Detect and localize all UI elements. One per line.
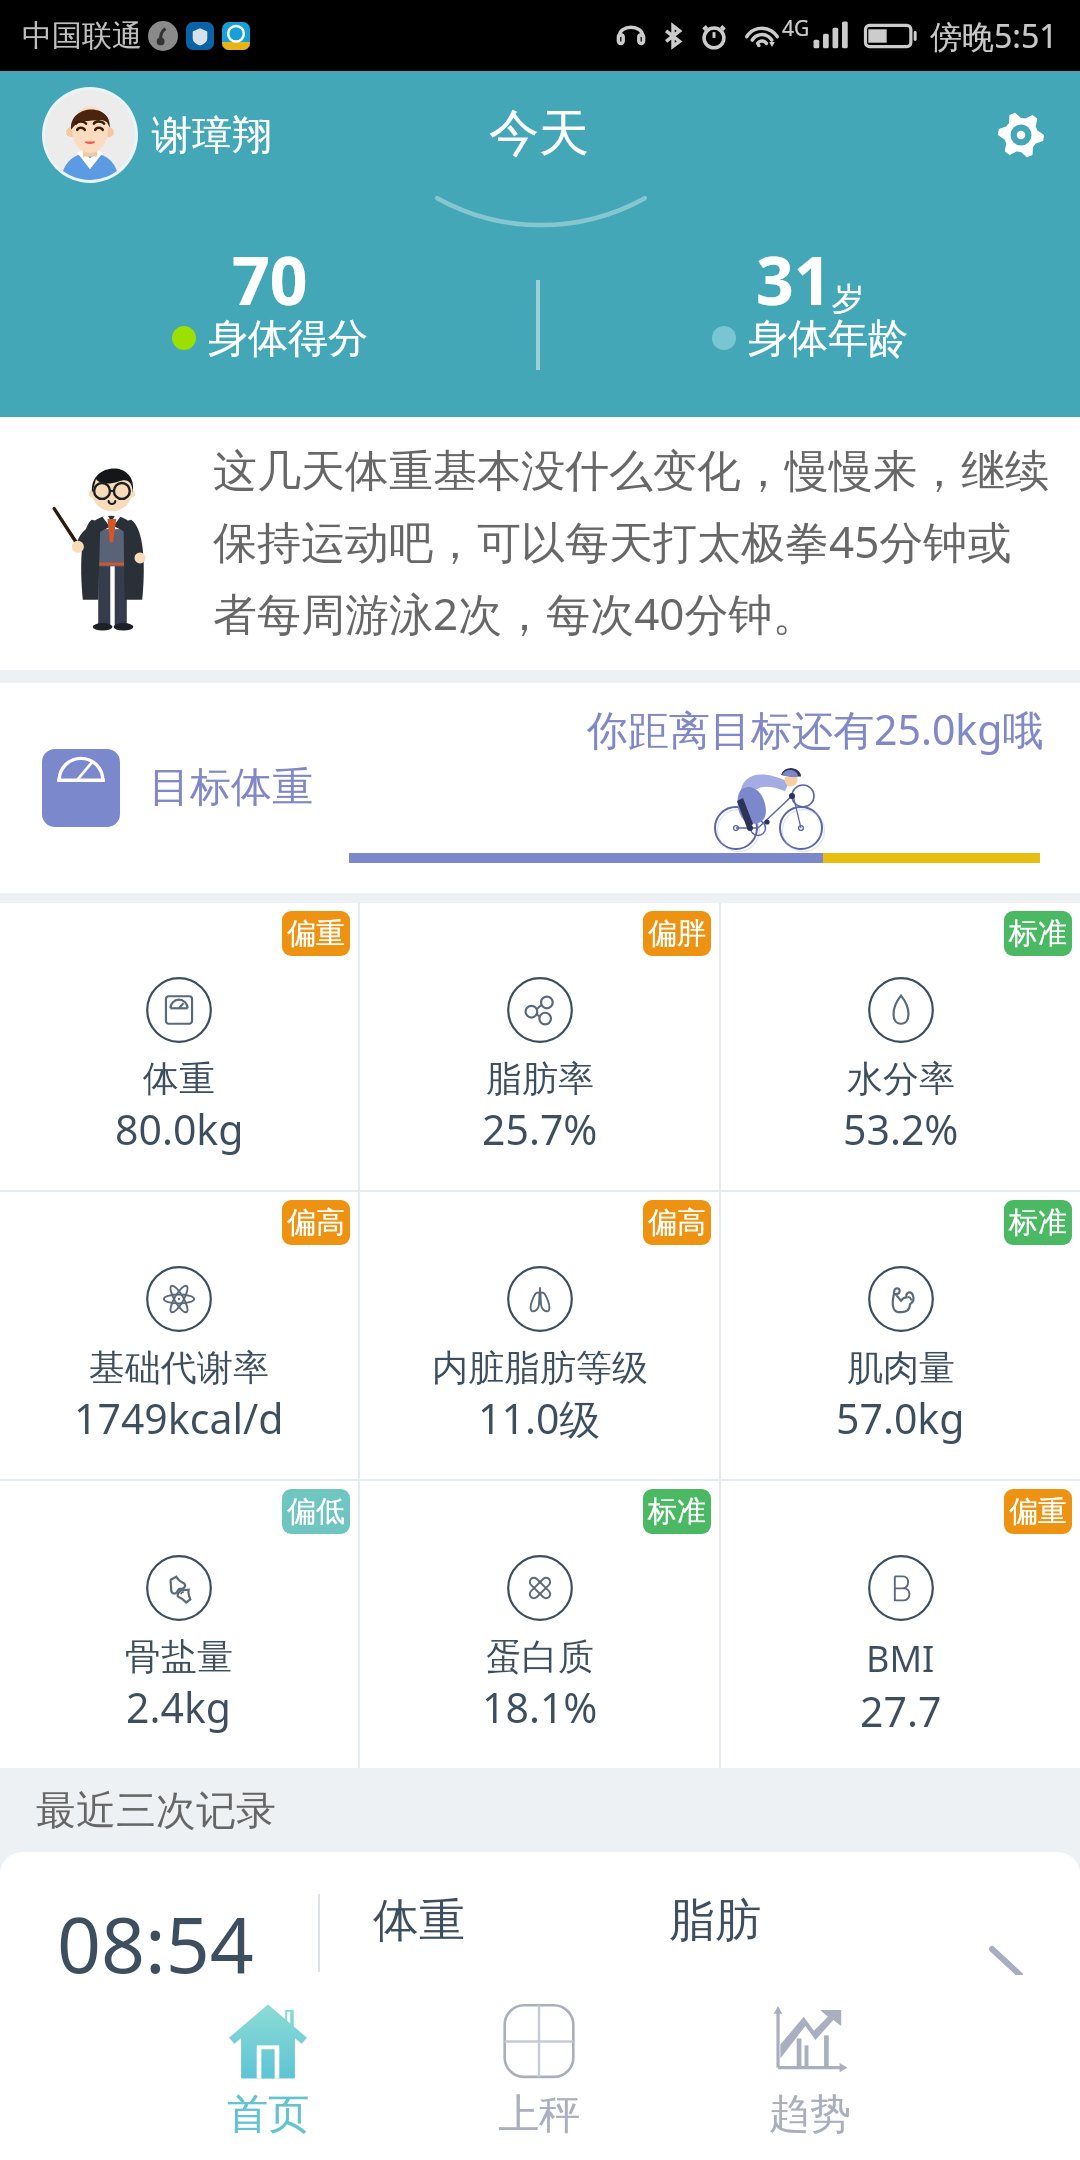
staticText: 标准 [648, 1493, 706, 1530]
staticText: 偏高 [648, 1204, 706, 1241]
staticText: 偏低 [287, 1493, 345, 1530]
staticText: 最近三次记录 [36, 1785, 276, 1835]
staticText: 脂肪率 [486, 1056, 594, 1101]
staticText: 2.4kg [126, 1679, 232, 1735]
staticText: 4G [782, 14, 810, 43]
button[interactable]: 标准 [721, 903, 1080, 1190]
staticText: 53.2% [843, 1101, 959, 1157]
staticText: 标准 [1009, 1204, 1067, 1241]
staticText: 中国联通 [22, 17, 142, 55]
staticText: 肌肉量 [847, 1345, 955, 1390]
staticText: 11.0级 [478, 1390, 601, 1446]
staticText: 谢璋翔 [152, 110, 272, 160]
staticText: 岁 [832, 279, 864, 319]
button[interactable]: 上秤 [403, 1975, 674, 2160]
staticText: 80.0kg [115, 1101, 244, 1157]
button[interactable]: 偏低 [0, 1481, 358, 1768]
button[interactable]: 08:54 [0, 1852, 1080, 1975]
staticText: 脂肪 [669, 1892, 761, 1950]
staticText: 偏胖 [648, 915, 706, 952]
staticText: 目标体重 [149, 762, 313, 814]
staticText: 水分率 [847, 1056, 955, 1101]
staticText: 你距离目标还有25.0kg哦 [587, 701, 1044, 757]
button[interactable]: 偏胖 [360, 903, 719, 1190]
staticText: 趋势 [769, 2089, 851, 2141]
staticText: 身体年龄 [748, 313, 908, 363]
button[interactable]: 首页 [132, 1975, 403, 2160]
button[interactable]: 标准 [721, 1192, 1080, 1479]
button[interactable]: 标准 [360, 1481, 719, 1768]
staticText: 57.0kg [836, 1390, 965, 1446]
staticText: 傍晚5:51 [930, 14, 1058, 58]
staticText: 70 [232, 234, 308, 324]
button[interactable]: 偏重 [721, 1481, 1080, 1768]
button[interactable]: Settings [990, 104, 1052, 166]
staticText: 上秤 [498, 2089, 580, 2141]
staticText: 身体得分 [208, 313, 368, 363]
button[interactable]: 偏高 [0, 1192, 358, 1479]
staticText: 体重 [143, 1056, 215, 1101]
staticText: 这几天体重基本没什么变化，慢慢来，继续保持运动吧，可以每天打太极拳45分钟或者每… [213, 444, 1055, 643]
staticText: 18.1% [482, 1679, 598, 1735]
staticText: 标准 [1009, 915, 1067, 952]
staticText: 基础代谢率 [89, 1345, 269, 1390]
staticText: 1749kcal/d [74, 1390, 284, 1446]
button[interactable]: 谢璋翔 [0, 87, 284, 183]
button[interactable]: 偏高 [360, 1192, 719, 1479]
staticText: BMI [866, 1634, 935, 1683]
staticText: 27.7 [860, 1683, 942, 1739]
button[interactable]: 趋势 [674, 1975, 945, 2160]
button[interactable]: 目标体重 [0, 683, 1080, 893]
staticText: 内脏脂肪等级 [432, 1345, 648, 1390]
staticText: 今天 [489, 102, 589, 165]
staticText: 偏高 [287, 1204, 345, 1241]
staticText: 31 [756, 234, 832, 324]
button[interactable]: 偏重 [0, 903, 358, 1190]
staticText: 25.7% [482, 1101, 598, 1157]
staticText: 骨盐量 [125, 1634, 233, 1679]
staticText: 08:54 [57, 1891, 254, 1975]
staticText: 首页 [227, 2089, 309, 2141]
staticText: 蛋白质 [486, 1634, 594, 1679]
staticText: 体重 [373, 1892, 465, 1950]
staticText: 偏重 [287, 915, 345, 952]
staticText: 偏重 [1009, 1493, 1067, 1530]
